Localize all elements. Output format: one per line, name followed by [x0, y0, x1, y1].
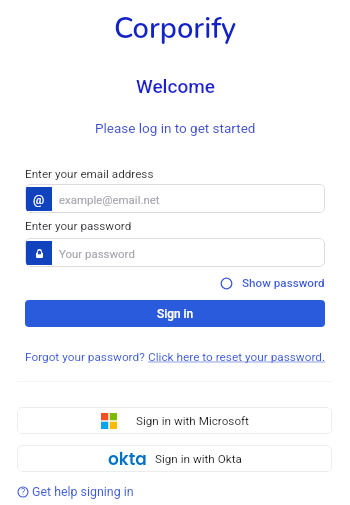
staticText: Corporify [114, 9, 237, 49]
staticText: okta [108, 447, 147, 471]
button[interactable]: Your password [25, 238, 325, 267]
staticText: Get help signing in [32, 484, 134, 499]
button[interactable]: Sign in [25, 300, 325, 327]
button[interactable]: Show password [220, 275, 325, 291]
button[interactable]: Click here to reset your password. [148, 350, 326, 364]
staticText: Sign in with Microsoft [136, 414, 249, 428]
staticText: @ [33, 192, 45, 207]
staticText: Enter your email address [25, 167, 154, 181]
staticText: Forgot your password? [25, 350, 148, 364]
staticText: Show password [242, 276, 325, 290]
staticText: Enter your password [25, 219, 132, 233]
staticText: Sign in with Okta [155, 452, 242, 466]
staticText: Your password [59, 247, 135, 260]
staticText: Please log in to get started [95, 120, 256, 136]
button[interactable]: okta [17, 445, 332, 472]
staticText: example@email.net [59, 193, 160, 206]
staticText: Welcome [136, 75, 215, 97]
staticText: Sign in [157, 307, 194, 321]
button[interactable]: Sign in with Microsoft [17, 407, 332, 434]
staticText: ? [21, 487, 26, 498]
button[interactable]: @ [25, 184, 325, 213]
other: Help [17, 486, 29, 498]
button[interactable]: Help [17, 484, 134, 499]
